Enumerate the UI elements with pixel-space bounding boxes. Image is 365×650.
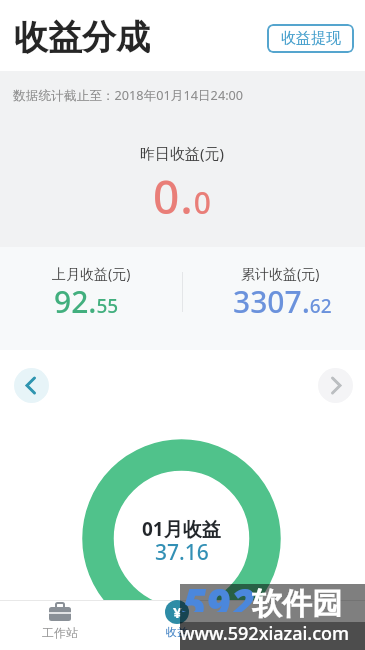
staticText: 37.16 bbox=[155, 538, 209, 567]
staticText: 收益提现 bbox=[281, 29, 341, 48]
staticText: 592 bbox=[182, 574, 256, 612]
button[interactable]: 收益提现 bbox=[267, 24, 354, 53]
button[interactable]: 工作站 bbox=[30, 602, 90, 650]
staticText: 工作站 bbox=[42, 625, 78, 640]
staticText: 3307.62 bbox=[233, 281, 332, 322]
staticText: ¥ bbox=[173, 602, 182, 622]
staticText: www.592xiazai.com bbox=[180, 621, 350, 646]
staticText: 数据统计截止至：2018年01月14日24:00 bbox=[13, 86, 244, 103]
staticText: 昨日收益(元) bbox=[140, 143, 225, 163]
staticText: 上月收益(元) bbox=[52, 264, 131, 283]
button[interactable] bbox=[14, 368, 49, 403]
staticText: 01月收益 bbox=[142, 516, 221, 542]
staticText: 92.55 bbox=[54, 281, 119, 322]
staticText: 0.0 bbox=[153, 165, 212, 228]
staticText: 累计收益(元) bbox=[241, 264, 320, 283]
button[interactable]: 上月收益(元) bbox=[0, 247, 182, 350]
staticText: 收益分成 bbox=[14, 16, 150, 59]
staticText: 软件园 bbox=[252, 585, 342, 623]
button[interactable] bbox=[318, 368, 353, 403]
button[interactable]: 累计收益(元) bbox=[189, 247, 365, 350]
staticText: 收益 bbox=[166, 625, 188, 639]
button[interactable]: ¥ bbox=[147, 600, 207, 650]
